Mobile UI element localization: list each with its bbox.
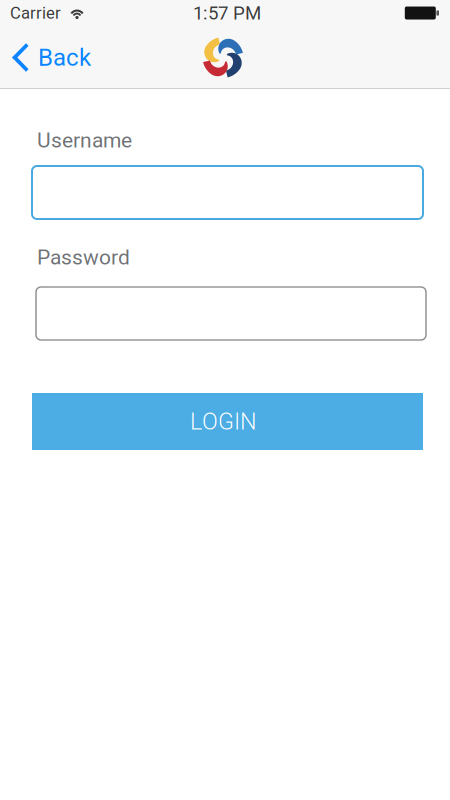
button[interactable]: Password text field: [36, 287, 426, 340]
staticText: Carrier: [10, 3, 61, 23]
button[interactable]: LOGIN: [32, 393, 423, 450]
staticText: LOGIN: [190, 408, 257, 435]
button[interactable]: Back: [0, 26, 103, 89]
staticText: Password: [37, 245, 130, 270]
staticText: 1:57 PM: [193, 2, 261, 24]
staticText: Username: [37, 128, 132, 153]
button[interactable]: Username text field: [32, 166, 423, 219]
staticText: Back: [38, 43, 91, 71]
